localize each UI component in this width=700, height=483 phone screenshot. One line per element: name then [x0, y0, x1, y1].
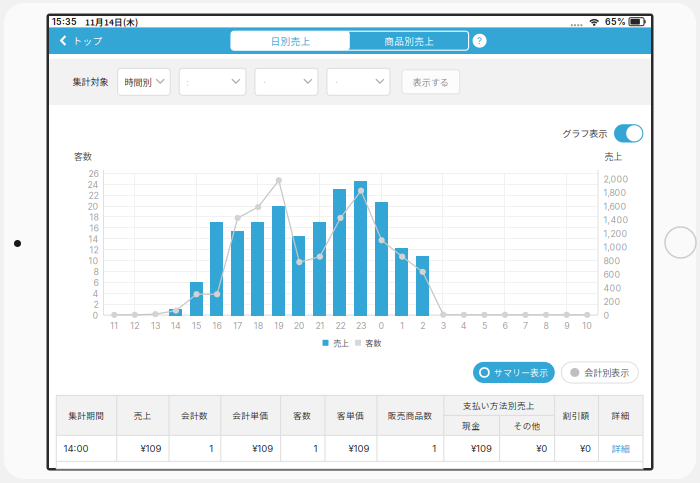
staticText: · [262, 75, 267, 88]
staticText: 1 [432, 443, 436, 454]
staticText: 会計単価 [232, 409, 268, 421]
staticText: 0 [93, 310, 99, 321]
staticText: 販売商品数 [387, 409, 432, 421]
staticText: 1,400 [603, 215, 628, 225]
staticText: 表示する [413, 75, 449, 88]
staticText: 26 [89, 168, 99, 179]
button[interactable]: 会計別表示 [561, 362, 638, 383]
staticText: 12 [90, 245, 99, 255]
staticText: 1 [209, 443, 213, 454]
button[interactable]: : [179, 68, 246, 95]
staticText: 24 [88, 179, 99, 190]
staticText: 2,000 [603, 174, 628, 184]
staticText: 7 [523, 320, 528, 331]
staticText: 200 [603, 296, 620, 307]
staticText: 22 [89, 190, 99, 201]
staticText: 会計別表示 [584, 366, 629, 379]
staticText: 6 [502, 320, 507, 331]
staticText: 売上 [133, 409, 151, 421]
staticText: 21 [315, 320, 324, 331]
staticText: 詳細 [611, 442, 629, 455]
button[interactable]: ヘルプ [469, 30, 491, 52]
staticText: 売上 [333, 337, 349, 349]
staticText: 22 [335, 320, 345, 331]
staticText: 1,600 [603, 201, 626, 212]
staticText: 17 [233, 320, 242, 331]
staticText: 商品別売上 [384, 34, 434, 48]
staticText: 1,800 [603, 187, 626, 198]
button[interactable]: · [255, 68, 318, 95]
staticText: 19 [274, 320, 283, 331]
staticText: 14 [171, 320, 181, 331]
staticText: 65% [605, 16, 626, 27]
staticText: 10 [582, 320, 592, 331]
staticText: 9 [564, 320, 569, 331]
staticText: ¥109 [252, 443, 273, 454]
staticText: 14 [89, 234, 99, 244]
staticText: 800 [603, 256, 620, 266]
staticText: 8 [544, 320, 549, 331]
staticText: 割引額 [563, 409, 590, 421]
button[interactable]: 日別売上 [231, 31, 350, 50]
button[interactable]: 14:00 [56, 436, 643, 461]
staticText: 1,200 [603, 228, 627, 239]
button[interactable]: 商品別売上 [350, 31, 469, 50]
staticText: 6 [94, 277, 99, 288]
staticText: 20 [88, 201, 99, 212]
staticText: ¥109 [141, 443, 162, 454]
staticText: 1 [313, 443, 317, 454]
staticText: 11月14日(木) [85, 15, 138, 28]
staticText: 集計期間 [68, 409, 104, 421]
staticText: ? [477, 35, 482, 46]
staticText: 日別売上 [270, 34, 310, 48]
staticText: 客数 [365, 337, 381, 349]
staticText: 詳細 [611, 409, 629, 421]
staticText: 15 [192, 320, 201, 331]
staticText: 13 [151, 320, 160, 331]
button[interactable]: 時間別 [118, 68, 170, 95]
button[interactable]: トップ [49, 27, 111, 54]
button[interactable]: · [327, 68, 390, 95]
staticText: 10 [89, 256, 99, 266]
staticText: : [186, 75, 189, 88]
button[interactable]: グラフ表示 [614, 124, 643, 142]
staticText: 2 [420, 320, 425, 331]
staticText: 18 [90, 212, 99, 223]
button[interactable]: 表示する [402, 70, 460, 94]
staticText: 客単価 [337, 409, 364, 421]
staticText: 16 [90, 223, 99, 234]
staticText: 会計数 [181, 409, 208, 421]
staticText: 0 [379, 320, 385, 331]
staticText: 12 [130, 320, 139, 331]
staticText: 14:00 [63, 443, 88, 454]
staticText: ¥109 [348, 443, 369, 454]
staticText: 4 [461, 320, 467, 331]
staticText: サマリー表示 [494, 366, 548, 379]
staticText: 20 [294, 320, 305, 331]
button[interactable]: サマリー表示 [473, 362, 555, 383]
staticText: その他 [514, 419, 541, 432]
staticText: ¥0 [580, 443, 591, 454]
staticText: 400 [603, 283, 621, 293]
staticText: 時間別 [125, 75, 152, 88]
staticText: ¥0 [536, 443, 547, 454]
staticText: ¥109 [471, 443, 492, 454]
staticText: グラフ表示 [562, 126, 607, 140]
staticText: 23 [356, 320, 366, 331]
staticText: 0 [603, 310, 609, 321]
staticText: 3 [441, 320, 446, 331]
staticText: 1 [400, 320, 404, 331]
staticText: 集計対象 [73, 75, 109, 88]
staticText: 2 [94, 299, 99, 310]
staticText: 現金 [462, 419, 480, 432]
staticText: · [334, 75, 339, 88]
staticText: 18 [254, 320, 263, 331]
staticText: 客数 [74, 149, 92, 162]
staticText: 4 [93, 288, 99, 299]
staticText: 1,000 [603, 242, 627, 253]
staticText: 売上 [604, 149, 622, 162]
staticText: 11 [110, 320, 118, 331]
staticText: 客数 [293, 409, 311, 421]
staticText: 支払い方法別売上 [463, 399, 535, 411]
staticText: 15:35 [52, 16, 77, 27]
